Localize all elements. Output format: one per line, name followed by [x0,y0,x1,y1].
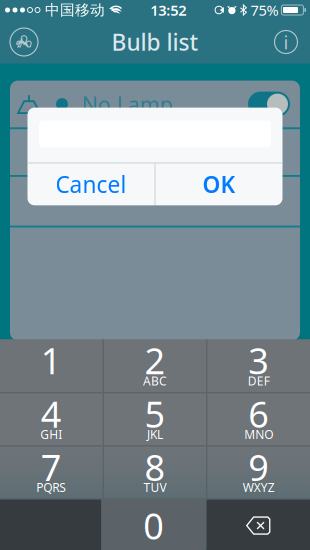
button[interactable]: 9 [207,447,310,497]
staticText: JKL [147,426,163,442]
button[interactable]: OK [155,163,283,205]
staticText: Bulb list [111,27,198,57]
staticText: No Lamp [82,90,173,118]
button[interactable]: 5 [104,394,206,445]
staticText: PQRS [36,479,66,495]
staticText: ABC [143,373,167,389]
staticText: 75% [250,0,278,20]
button[interactable]: 0 [102,500,205,550]
button[interactable]: Cancel [27,163,155,205]
staticText: DEF [248,373,270,389]
staticText: 3 [248,336,269,384]
button[interactable]: 8 [104,447,206,497]
staticText: 13:52 [150,0,186,20]
staticText: i [283,30,288,54]
button[interactable]: 3 [207,339,310,392]
staticText: 0 [143,502,164,549]
staticText: MNO [244,426,273,442]
button[interactable]: Info [262,20,310,64]
staticText: 1 [41,336,62,384]
button[interactable]: Bulbs [0,20,48,64]
button[interactable]: 1 [0,339,103,392]
staticText: WXYZ [243,479,275,495]
button[interactable]: 2 [104,339,206,392]
staticText: Cancel [56,169,127,199]
button[interactable]: Delete [206,500,310,550]
staticText: 9 [248,443,269,491]
button[interactable]: 6 [207,394,310,445]
staticText: 7 [41,443,62,491]
staticText: OK [202,169,235,199]
button[interactable]: 7 [0,447,103,497]
staticText: 4 [41,390,62,438]
button[interactable]: 4 [0,394,103,445]
staticText: GHI [40,426,62,442]
staticText: 5 [144,390,165,438]
staticText: 8 [144,443,165,491]
staticText: 2 [144,336,165,384]
staticText: TUV [143,479,166,495]
staticText: 6 [248,390,269,438]
staticText: 中国移动 [45,1,105,19]
